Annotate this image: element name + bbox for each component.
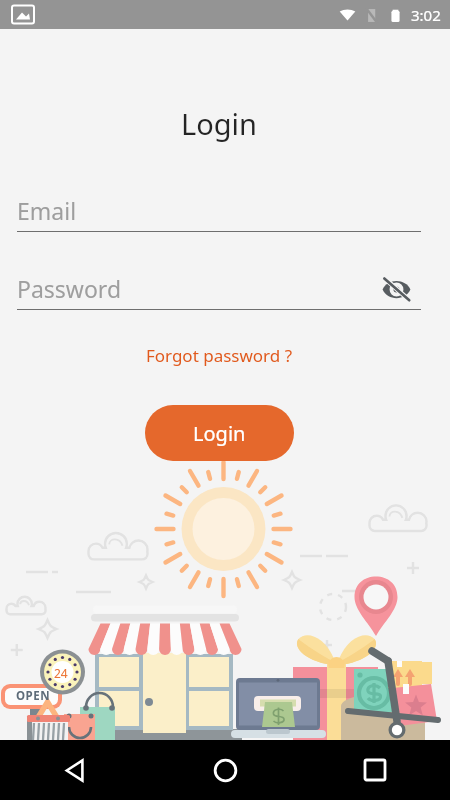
- button[interactable]: Back: [0, 740, 150, 800]
- staticText: Email: [17, 195, 77, 226]
- button[interactable]: Password: [17, 273, 421, 310]
- button[interactable]: Recent apps: [300, 740, 450, 800]
- button[interactable]: Home: [150, 740, 300, 800]
- staticText: Login: [193, 420, 246, 447]
- button[interactable]: Email: [17, 195, 421, 232]
- staticText: Password: [17, 273, 122, 304]
- staticText: OPEN: [16, 688, 51, 704]
- staticText: 3:02: [411, 5, 441, 25]
- button[interactable]: Login: [145, 405, 294, 461]
- staticText: 24: [54, 665, 68, 681]
- staticText: Login: [0, 104, 438, 143]
- button[interactable]: Toggle password visibility: [381, 274, 411, 304]
- button[interactable]: Forgot password ?: [0, 344, 438, 367]
